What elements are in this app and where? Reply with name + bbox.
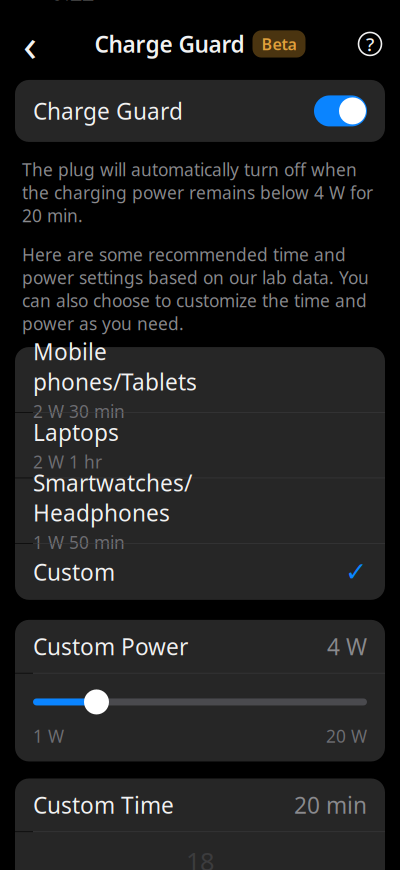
button[interactable]: Mobile phones/Tablets [15, 347, 385, 412]
staticText: Charge Guard [33, 96, 183, 126]
staticText: 1 W 50 min [33, 531, 125, 554]
button[interactable]: Back [8, 22, 52, 66]
staticText: Beta [261, 33, 296, 54]
staticText: 20 min [294, 790, 367, 820]
staticText: Custom Power [33, 631, 188, 661]
button[interactable]: Smartwatches/Headphones [15, 478, 385, 543]
staticText: 4 W [327, 631, 367, 661]
staticText: Custom [33, 557, 115, 587]
button[interactable]: Help [348, 22, 392, 66]
staticText: Charge Guard [94, 29, 244, 59]
staticText: Laptops [33, 417, 119, 447]
staticText: Custom Time [33, 790, 174, 820]
staticText: 2 W 1 hr [33, 450, 102, 473]
staticText: 1 W [33, 724, 64, 747]
staticText: 18 [186, 844, 214, 870]
staticText: The plug will automatically turn off whe… [22, 158, 373, 227]
button[interactable]: Charge Guard [0, 70, 400, 142]
staticText: ? [366, 31, 374, 56]
staticText: ‹ [23, 14, 37, 74]
button[interactable]: Custom [15, 544, 385, 600]
staticText: Smartwatches/Headphones [33, 468, 192, 528]
staticText: 20 W [326, 724, 367, 747]
staticText: Mobile phones/Tablets [33, 336, 197, 397]
staticText: 5:22 [52, 0, 94, 6]
staticText: Here are some recommended time and power… [22, 243, 369, 335]
staticText: 2 W 30 min [33, 400, 125, 423]
button[interactable]: Laptops [15, 413, 385, 478]
staticText: ✓ [345, 557, 367, 587]
